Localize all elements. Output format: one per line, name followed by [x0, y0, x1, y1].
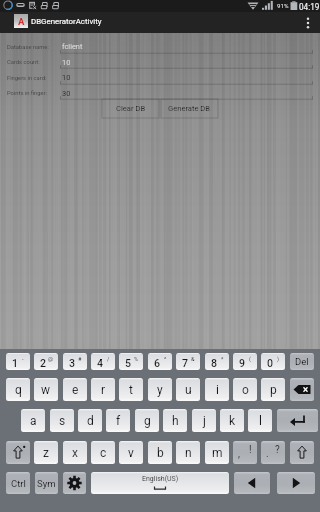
button[interactable]: r: [91, 378, 115, 401]
other: Shift: [290, 441, 314, 464]
staticText: o: [242, 383, 249, 397]
button[interactable]: Del: [290, 353, 314, 370]
staticText: Sym: [37, 478, 56, 489]
staticText: A: [18, 16, 25, 27]
other: Backspace: [290, 378, 314, 401]
staticText: 8: [211, 357, 218, 369]
button[interactable]: g: [135, 409, 159, 432]
staticText: Del: [295, 356, 309, 367]
staticText: i: [216, 383, 219, 397]
staticText: Cards count:: [7, 59, 40, 66]
button[interactable]: Sym: [35, 472, 58, 494]
staticText: .: [266, 448, 269, 460]
button[interactable]: k: [220, 409, 244, 432]
button[interactable]: m: [205, 441, 229, 464]
button[interactable]: Move left: [234, 472, 270, 494]
staticText: -: [22, 356, 24, 363]
staticText: r: [101, 383, 106, 397]
button[interactable]: p: [261, 378, 285, 401]
staticText: @: [48, 356, 54, 363]
staticText: 91%: [277, 2, 289, 9]
staticText: k: [229, 414, 236, 428]
button[interactable]: v: [119, 441, 143, 464]
button[interactable]: z: [34, 441, 58, 464]
button[interactable]: u: [176, 378, 200, 401]
button[interactable]: y: [148, 378, 172, 401]
staticText: 9: [239, 357, 246, 369]
staticText: fclient: [62, 42, 83, 51]
button[interactable]: 6: [148, 353, 172, 370]
staticText: Clear DB: [116, 104, 146, 113]
staticText: m: [212, 446, 223, 460]
button[interactable]: s: [50, 409, 74, 432]
staticText: 0: [267, 357, 274, 369]
button[interactable]: l: [248, 409, 272, 432]
staticText: (: [249, 356, 251, 363]
button[interactable]: ,: [233, 441, 257, 464]
staticText: &: [191, 356, 195, 363]
staticText: Ctrl: [11, 478, 26, 489]
button[interactable]: 8: [205, 353, 229, 370]
other: Move left: [234, 472, 270, 494]
button[interactable]: a: [21, 409, 45, 432]
button[interactable]: h: [163, 409, 187, 432]
button[interactable]: English(US): [91, 472, 229, 494]
staticText: 30: [62, 89, 71, 98]
button[interactable]: e: [63, 378, 87, 401]
staticText: a: [30, 414, 37, 428]
staticText: b: [157, 446, 164, 460]
button[interactable]: n: [176, 441, 200, 464]
button[interactable]: d: [78, 409, 102, 432]
button[interactable]: Backspace: [290, 378, 314, 401]
button[interactable]: 9: [233, 353, 257, 370]
button[interactable]: 0: [261, 353, 285, 370]
staticText: 1: [12, 357, 19, 369]
button[interactable]: Enter: [277, 409, 318, 432]
button[interactable]: 1: [6, 353, 30, 370]
staticText: x: [72, 446, 78, 460]
button[interactable]: x: [63, 441, 87, 464]
staticText: ?: [275, 444, 280, 456]
button[interactable]: Shift: [290, 441, 314, 464]
staticText: Generate DB: [168, 104, 211, 113]
button[interactable]: Generate DB: [161, 99, 218, 118]
button[interactable]: c: [91, 441, 115, 464]
button[interactable]: .: [261, 441, 285, 464]
button[interactable]: More options: [296, 12, 320, 33]
button[interactable]: Settings: [63, 472, 86, 494]
button[interactable]: Move right: [277, 472, 315, 494]
staticText: g: [144, 414, 151, 428]
staticText: z: [43, 446, 49, 460]
button[interactable]: 2: [34, 353, 58, 370]
button[interactable]: 3: [63, 353, 87, 370]
button[interactable]: Ctrl: [6, 472, 30, 494]
staticText: 10: [62, 58, 71, 67]
button[interactable]: Shift: [6, 441, 30, 464]
staticText: w: [41, 383, 51, 397]
staticText: #: [78, 356, 82, 363]
staticText: !: [249, 444, 252, 456]
button[interactable]: 5: [119, 353, 143, 370]
button[interactable]: 4: [91, 353, 115, 370]
staticText: 04:19: [299, 2, 320, 12]
staticText: d: [87, 414, 94, 428]
button[interactable]: w: [34, 378, 58, 401]
button[interactable]: q: [6, 378, 30, 401]
button[interactable]: i: [205, 378, 229, 401]
button[interactable]: Clear DB: [102, 99, 159, 118]
button[interactable]: t: [119, 378, 143, 401]
staticText: j: [203, 414, 206, 428]
staticText: *: [221, 356, 224, 363]
button[interactable]: f: [106, 409, 130, 432]
button[interactable]: b: [148, 441, 172, 464]
staticText: s: [59, 414, 66, 428]
staticText: 10: [62, 73, 71, 82]
staticText: %: [134, 356, 139, 363]
button[interactable]: 7: [176, 353, 200, 370]
staticText: h: [172, 414, 179, 428]
staticText: e: [72, 383, 79, 397]
staticText: 5: [125, 357, 132, 369]
staticText: f: [116, 414, 121, 428]
button[interactable]: o: [233, 378, 257, 401]
button[interactable]: j: [192, 409, 216, 432]
